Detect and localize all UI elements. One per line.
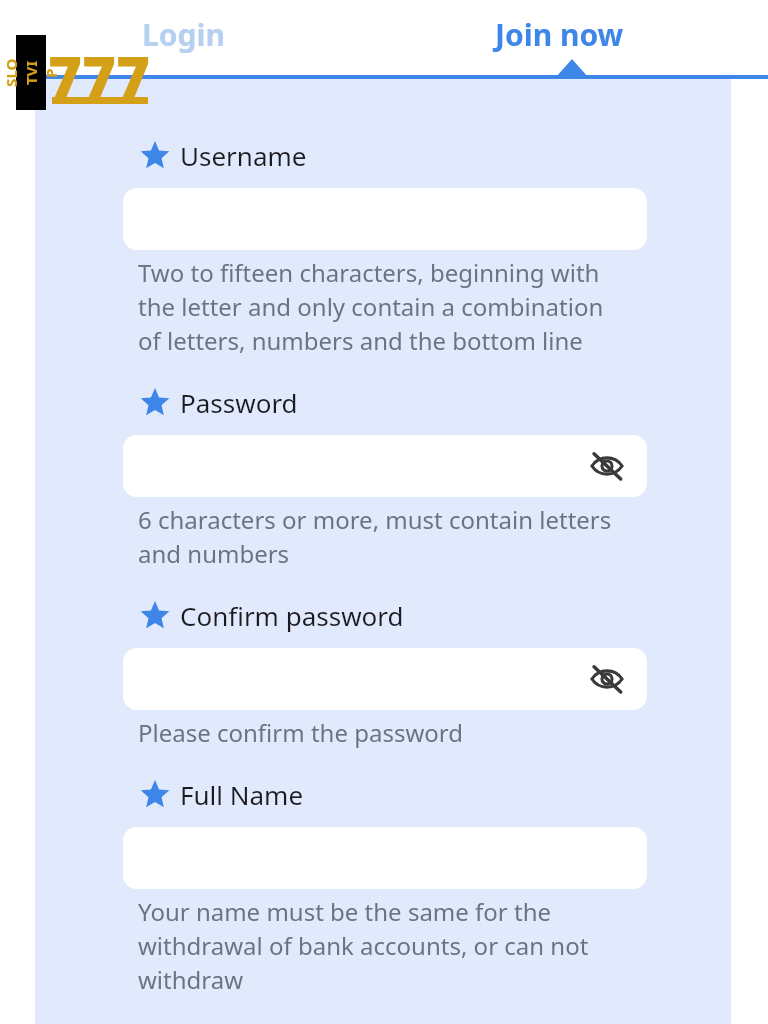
button[interactable]: Username bbox=[140, 138, 315, 173]
staticText: Your name must be the same for the withd… bbox=[138, 895, 678, 996]
staticText: SLOTVIP bbox=[1, 58, 61, 88]
button[interactable]: Toggle password visibility bbox=[585, 657, 629, 701]
staticText: Join now bbox=[495, 14, 624, 55]
staticText: 777 bbox=[48, 37, 150, 112]
staticText: Two to fifteen characters, beginning wit… bbox=[138, 256, 678, 357]
staticText: Username bbox=[180, 138, 307, 173]
button[interactable]: Toggle password visibility bbox=[123, 648, 647, 710]
button[interactable]: Full Name bbox=[140, 777, 312, 812]
button[interactable]: Join now bbox=[489, 12, 630, 57]
staticText: 6 characters or more, must contain lette… bbox=[138, 503, 678, 570]
staticText: Login bbox=[142, 14, 225, 55]
staticText: Please confirm the password bbox=[138, 716, 678, 749]
staticText: Full Name bbox=[180, 777, 304, 812]
staticText: Confirm password bbox=[180, 598, 404, 633]
button[interactable]: Toggle password visibility bbox=[123, 435, 647, 497]
button[interactable]: Password bbox=[140, 385, 306, 420]
button[interactable]: Toggle password visibility bbox=[585, 444, 629, 488]
staticText: Password bbox=[180, 385, 298, 420]
button[interactable]: Login bbox=[136, 12, 231, 57]
button[interactable]: Confirm password bbox=[140, 598, 412, 633]
